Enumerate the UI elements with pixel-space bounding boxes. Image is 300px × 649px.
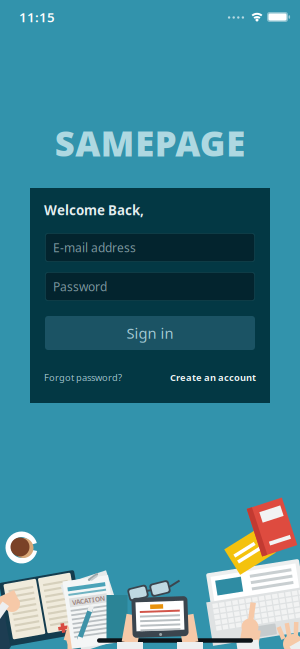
staticText: SAMEPAGE bbox=[55, 120, 245, 166]
staticText: Forgot password? bbox=[44, 371, 122, 384]
staticText: E-mail address bbox=[53, 239, 136, 255]
button[interactable]: Sign in bbox=[45, 316, 255, 350]
staticText: VACATION bbox=[73, 596, 106, 605]
staticText: Password bbox=[53, 278, 107, 294]
staticText: Welcome Back, bbox=[44, 201, 144, 219]
button[interactable]: E-mail address bbox=[45, 233, 255, 262]
button[interactable]: Create an account bbox=[170, 371, 256, 384]
button[interactable]: Password bbox=[45, 272, 255, 301]
staticText: 11:15 bbox=[19, 8, 55, 26]
staticText: Create an account bbox=[170, 371, 256, 384]
button[interactable]: Forgot password? bbox=[44, 371, 122, 384]
staticText: Sign in bbox=[126, 323, 173, 343]
